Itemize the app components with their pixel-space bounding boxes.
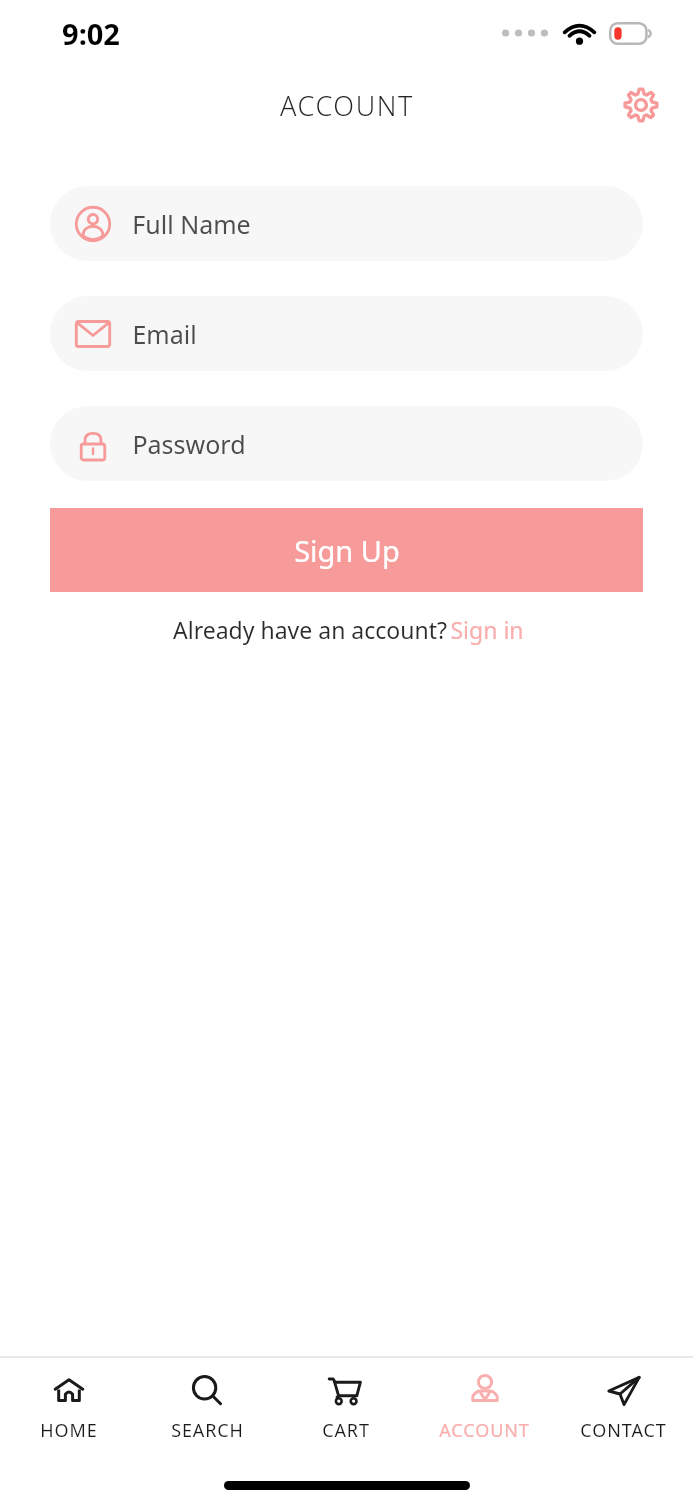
- button[interactable]: Password: [50, 406, 643, 481]
- button[interactable]: CART: [276, 1358, 415, 1456]
- staticText: 9:02: [62, 14, 120, 53]
- staticText: ACCOUNT: [280, 87, 414, 124]
- staticText: Sign Up: [294, 531, 400, 570]
- staticText: Full Name: [132, 207, 251, 241]
- staticText: Email: [132, 317, 197, 351]
- button[interactable]: Settings: [615, 79, 667, 131]
- staticText: CART: [322, 1418, 370, 1443]
- staticText: SEARCH: [171, 1418, 244, 1443]
- button[interactable]: Sign in: [450, 614, 524, 645]
- button[interactable]: Full Name: [50, 186, 643, 261]
- staticText: HOME: [40, 1418, 98, 1443]
- button[interactable]: ACCOUNT: [415, 1358, 554, 1456]
- button[interactable]: HOME: [0, 1358, 138, 1456]
- button[interactable]: Sign Up: [50, 508, 643, 592]
- staticText: ACCOUNT: [439, 1418, 530, 1443]
- staticText: Password: [132, 427, 246, 461]
- button[interactable]: CONTACT: [554, 1358, 693, 1456]
- staticText: Already have an account?: [170, 614, 450, 645]
- staticText: Sign in: [450, 614, 524, 645]
- staticText: CONTACT: [580, 1418, 667, 1443]
- button[interactable]: SEARCH: [138, 1358, 276, 1456]
- button[interactable]: Email: [50, 296, 643, 371]
